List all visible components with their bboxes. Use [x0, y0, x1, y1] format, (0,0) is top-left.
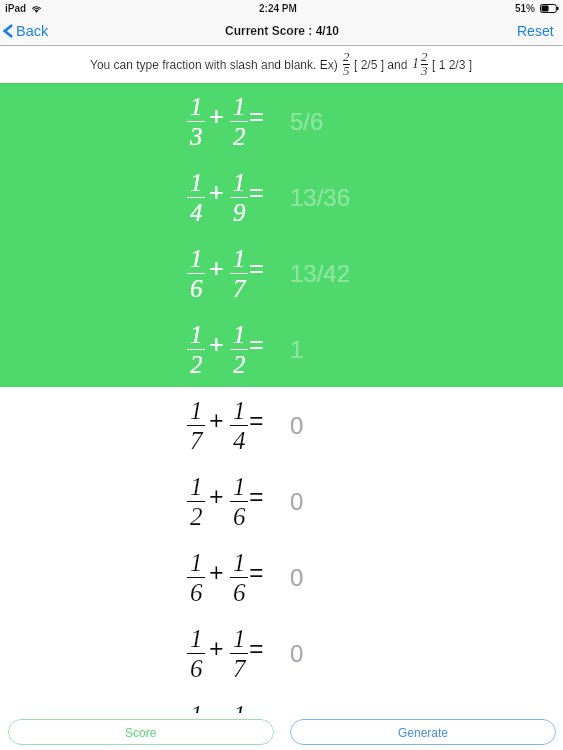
- staticText: 0: [290, 564, 304, 591]
- staticText: 5/6: [290, 108, 324, 135]
- staticText: 1: [233, 549, 246, 577]
- button[interactable]: 1: [0, 387, 563, 463]
- staticText: 1: [233, 397, 246, 425]
- staticText: 1: [190, 397, 203, 425]
- staticText: 2: [190, 503, 203, 531]
- button[interactable]: Score: [8, 719, 274, 745]
- staticText: =: [249, 482, 264, 510]
- staticText: 6: [190, 275, 203, 303]
- staticText: Current Score : 4/10: [225, 24, 340, 37]
- button[interactable]: Back: [0, 23, 51, 39]
- staticText: 5: [343, 63, 350, 77]
- staticText: +: [209, 634, 224, 662]
- button[interactable]: 1: [0, 235, 563, 311]
- staticText: +: [209, 330, 224, 358]
- staticText: =: [249, 634, 264, 662]
- staticText: 13/42: [290, 260, 351, 287]
- staticText: 2: [421, 49, 428, 63]
- other: Battery 51 percent: [540, 4, 559, 13]
- staticText: 2: [233, 123, 246, 151]
- button[interactable]: 1: [0, 691, 563, 713]
- staticText: 1: [233, 245, 246, 273]
- staticText: =: [249, 330, 264, 358]
- staticText: 7: [233, 275, 246, 303]
- button[interactable]: 1: [0, 539, 563, 615]
- staticText: 1: [233, 473, 246, 501]
- staticText: 0: [290, 412, 304, 439]
- button[interactable]: 1: [0, 159, 563, 235]
- button[interactable]: Reset: [515, 23, 556, 39]
- staticText: 1: [233, 701, 246, 713]
- staticText: 7: [190, 427, 203, 455]
- staticText: 6: [190, 655, 203, 683]
- staticText: 1: [190, 93, 203, 121]
- button[interactable]: 1: [0, 311, 563, 387]
- staticText: +: [209, 558, 224, 586]
- staticText: 2:24 PM: [259, 3, 297, 14]
- staticText: iPad: [5, 3, 27, 14]
- staticText: 1: [190, 701, 203, 713]
- staticText: 13/36: [290, 184, 351, 211]
- staticText: 7: [233, 655, 246, 683]
- button[interactable]: 1: [0, 463, 563, 539]
- staticText: 2: [190, 351, 203, 379]
- staticText: 51%: [515, 3, 536, 14]
- staticText: [ 2/5 ] and: [354, 58, 408, 71]
- staticText: 1: [290, 336, 304, 363]
- staticText: Back: [16, 23, 49, 39]
- staticText: 1: [233, 169, 246, 197]
- button[interactable]: 1: [0, 615, 563, 691]
- staticText: +: [209, 102, 224, 130]
- staticText: +: [209, 406, 224, 434]
- staticText: 0: [290, 640, 304, 667]
- staticText: 1: [233, 625, 246, 653]
- staticText: 1: [190, 473, 203, 501]
- staticText: Generate: [398, 726, 449, 739]
- staticText: +: [209, 178, 224, 206]
- staticText: 1: [190, 245, 203, 273]
- staticText: 4: [190, 199, 203, 227]
- staticText: 6: [233, 579, 246, 607]
- staticText: +: [209, 482, 224, 510]
- staticText: 1: [190, 169, 203, 197]
- staticText: 1: [233, 93, 246, 121]
- button[interactable]: Generate: [290, 719, 556, 745]
- button[interactable]: 1: [0, 83, 563, 159]
- staticText: 1: [190, 625, 203, 653]
- staticText: 1: [233, 321, 246, 349]
- staticText: =: [249, 178, 264, 206]
- staticText: 3: [421, 63, 428, 77]
- staticText: +: [209, 254, 224, 282]
- staticText: =: [249, 406, 264, 434]
- staticText: 1: [412, 56, 419, 72]
- staticText: Score: [125, 726, 157, 739]
- staticText: 3: [190, 123, 203, 151]
- staticText: [ 1 2/3 ]: [432, 58, 473, 71]
- staticText: =: [249, 254, 264, 282]
- staticText: You can type fraction with slash and bla…: [90, 58, 338, 71]
- staticText: =: [249, 102, 264, 130]
- staticText: 2: [233, 351, 246, 379]
- staticText: 4: [233, 427, 246, 455]
- staticText: 1: [190, 549, 203, 577]
- staticText: Reset: [517, 23, 554, 39]
- staticText: 6: [190, 579, 203, 607]
- staticText: 1: [190, 321, 203, 349]
- other: Wi-Fi: [31, 4, 42, 13]
- staticText: 6: [233, 503, 246, 531]
- staticText: 9: [233, 199, 246, 227]
- staticText: 2: [343, 49, 350, 63]
- staticText: =: [249, 558, 264, 586]
- staticText: 0: [290, 488, 304, 515]
